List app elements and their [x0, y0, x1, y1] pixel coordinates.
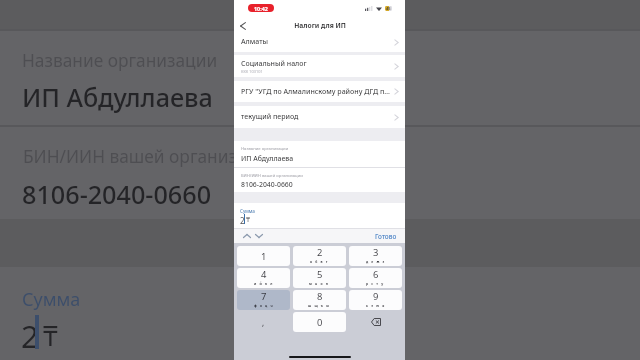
staticText: д е ж з — [366, 259, 386, 264]
staticText: , — [262, 317, 265, 328]
button[interactable]: РГУ "УГД по Алмалинскому району ДГД по г… — [234, 81, 405, 102]
staticText: Готово — [375, 232, 397, 241]
staticText: ₸ — [43, 317, 58, 354]
staticText: а б в г — [310, 259, 329, 264]
staticText: 9 — [373, 290, 379, 303]
staticText: Название организации — [22, 49, 218, 73]
button[interactable]: , — [237, 312, 290, 332]
button[interactable]: 6 — [349, 268, 402, 288]
button[interactable]: 8 — [293, 290, 346, 310]
staticText: Сумма — [22, 287, 81, 312]
staticText: р с т у — [366, 281, 385, 286]
staticText: 8 — [317, 290, 323, 303]
staticText: ш щ ъ ы — [308, 303, 331, 308]
button[interactable]: Back — [235, 18, 251, 34]
button[interactable]: 2 — [293, 246, 346, 266]
staticText: 2 — [317, 246, 323, 259]
staticText: ь э ю я — [366, 303, 386, 308]
staticText: 4 — [261, 268, 267, 281]
staticText: 6 — [373, 268, 379, 281]
staticText: БИН/ИИН вашей организации — [23, 145, 279, 169]
staticText: 45 — [386, 6, 391, 11]
staticText: БИН/ИИН вашей организации — [241, 173, 303, 179]
button[interactable]: Next field — [253, 230, 264, 242]
staticText: ф х ц ч — [254, 303, 274, 308]
staticText: текущий период — [241, 112, 299, 122]
staticText: м н о п — [309, 281, 330, 286]
staticText: Алматы — [241, 37, 269, 47]
staticText: Название организации — [241, 146, 289, 152]
staticText: ₸ — [246, 214, 251, 224]
button[interactable]: Delete — [349, 312, 402, 332]
button[interactable]: 5 — [293, 268, 346, 288]
button[interactable]: 9 — [349, 290, 402, 310]
button[interactable]: Готово — [374, 230, 398, 243]
staticText: 1 — [261, 250, 267, 263]
button[interactable]: 4 — [237, 268, 290, 288]
staticText: Социальный налог — [241, 59, 307, 69]
staticText: 2 — [21, 315, 39, 357]
staticText: ИП Абдуллаева — [22, 80, 213, 114]
button[interactable]: Алматы — [234, 32, 405, 52]
staticText: 7 — [261, 290, 267, 303]
staticText: ИП Абдуллаева — [241, 154, 294, 163]
staticText: 2 — [240, 215, 245, 226]
staticText: 5 — [317, 268, 323, 281]
staticText: Налоги для ИП — [294, 21, 346, 30]
staticText: Сумма — [240, 208, 255, 214]
staticText: 8106-2040-0660 — [241, 180, 293, 189]
button[interactable]: 1 — [237, 246, 290, 266]
staticText: ККК 103101 — [241, 69, 263, 74]
button[interactable]: 7 — [237, 290, 290, 310]
staticText: 8106-2040-0660 — [22, 177, 212, 211]
staticText: РГУ "УГД по Алмалинскому району ДГД по г… — [241, 87, 391, 97]
button[interactable]: 3 — [349, 246, 402, 266]
button[interactable]: 0 — [293, 312, 346, 332]
staticText: 10:42 — [254, 5, 268, 12]
staticText: 3 — [373, 246, 379, 259]
button[interactable]: текущий период — [234, 106, 405, 128]
staticText: и й к л — [254, 281, 274, 286]
button[interactable]: Социальный налог — [234, 55, 405, 77]
staticText: 0 — [317, 316, 323, 329]
button[interactable]: Previous field — [241, 230, 252, 242]
